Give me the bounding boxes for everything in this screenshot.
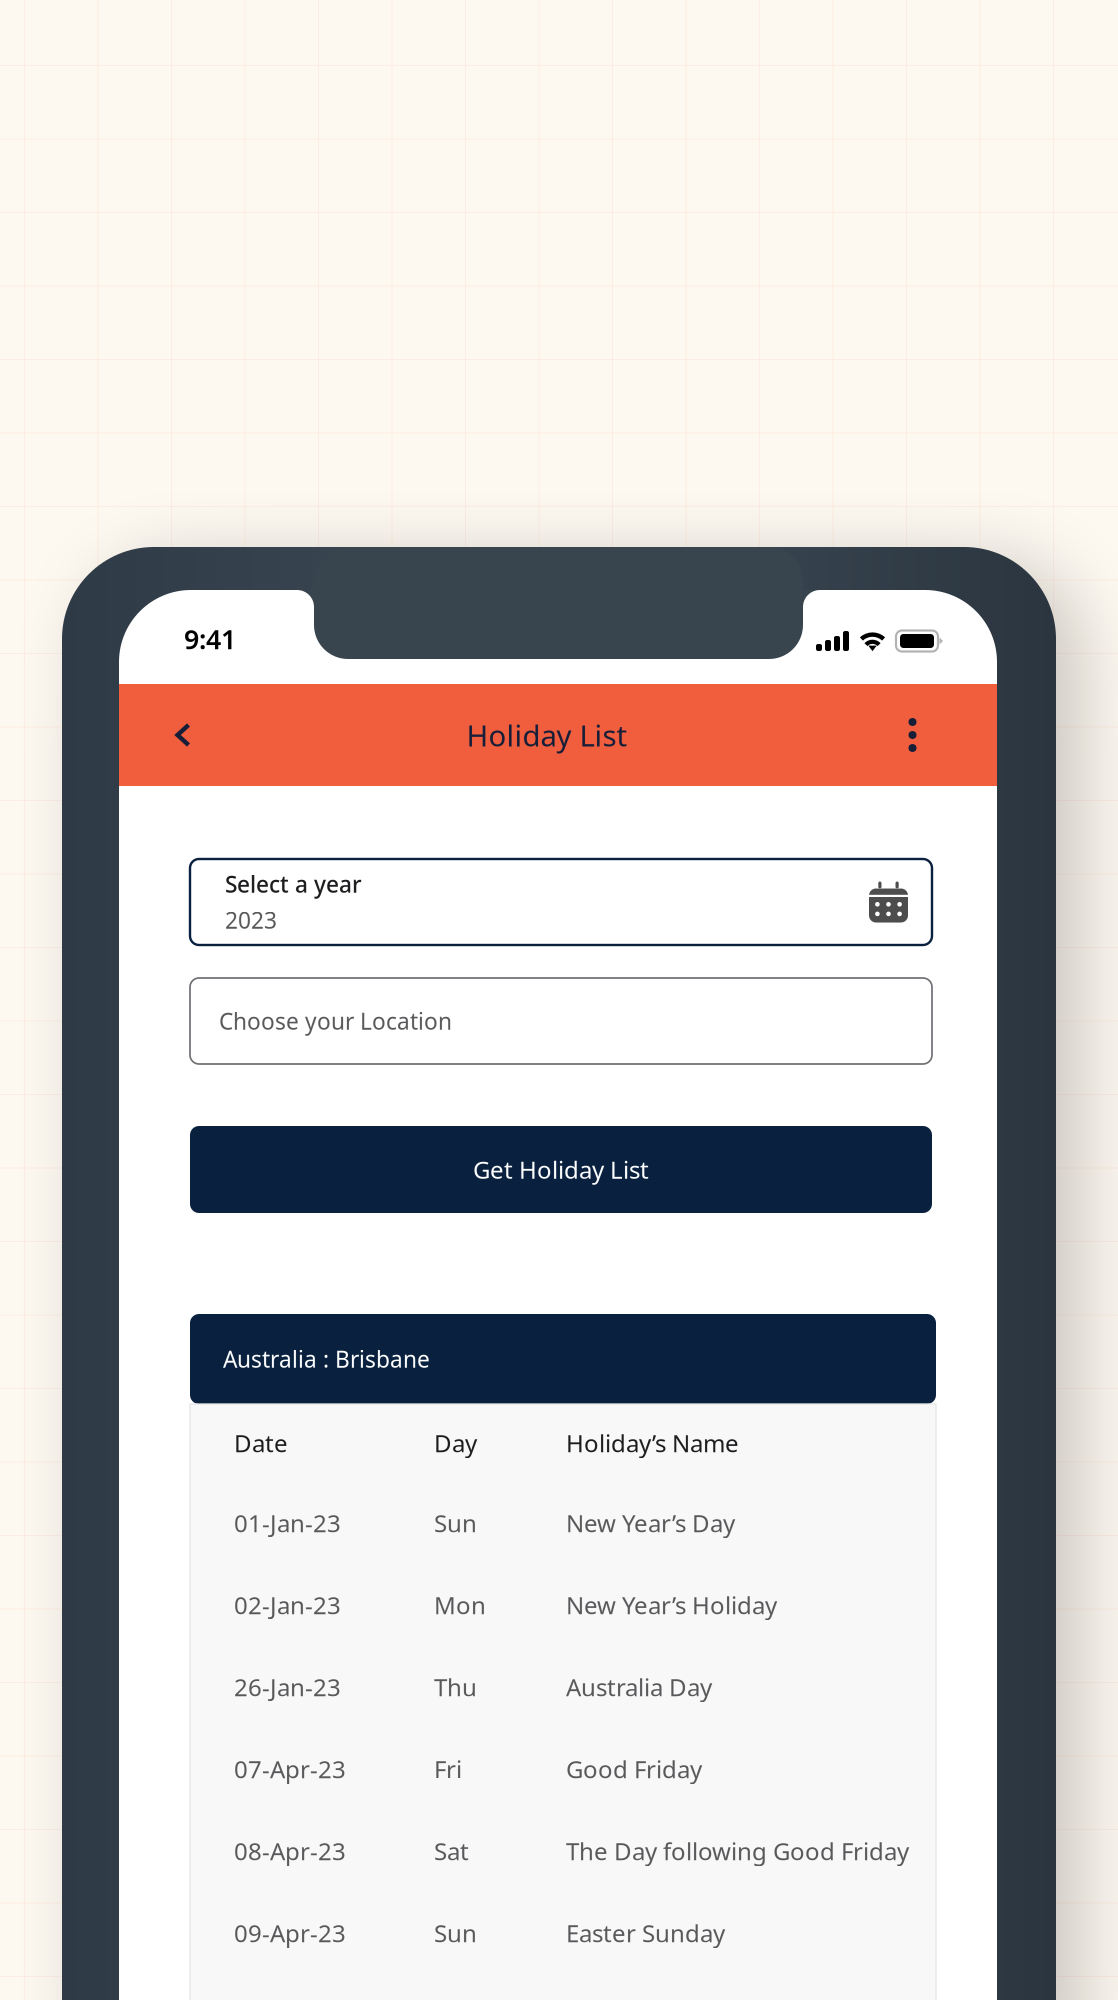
staticText: Australia Day (566, 1671, 712, 1703)
staticText: Select a year (225, 869, 362, 899)
staticText: Holiday List (466, 715, 627, 754)
staticText: Sun (434, 1507, 477, 1539)
button[interactable]: Back (119, 684, 247, 786)
staticText: New Year’s Day (566, 1507, 735, 1539)
staticText: 02-Jan-23 (234, 1589, 341, 1621)
staticText: Day (434, 1427, 477, 1459)
staticText: Mon (434, 1589, 486, 1621)
button[interactable]: Select a year (190, 859, 932, 945)
staticText: 9:41 (184, 621, 236, 657)
staticText: Sat (434, 1835, 469, 1867)
staticText: Date (234, 1427, 288, 1459)
staticText: Australia : Brisbane (223, 1344, 430, 1374)
button[interactable]: More options (828, 684, 997, 786)
staticText: 2023 (225, 905, 277, 935)
staticText: The Day following Good Friday (566, 1835, 909, 1867)
staticText: 01-Jan-23 (234, 1507, 341, 1539)
staticText: 26-Jan-23 (234, 1671, 341, 1703)
staticText: 08-Apr-23 (234, 1835, 346, 1867)
staticText: 07-Apr-23 (234, 1753, 346, 1785)
staticText: Fri (434, 1753, 462, 1785)
staticText: Thu (434, 1671, 477, 1703)
staticText: Easter Sunday (566, 1917, 725, 1949)
staticText: Choose your Location (219, 1006, 452, 1036)
staticText: Get Holiday List (473, 1154, 649, 1185)
staticText: Sun (434, 1917, 477, 1949)
staticText: New Year’s Holiday (566, 1589, 777, 1621)
button[interactable]: Choose your Location (190, 978, 932, 1064)
staticText: 09-Apr-23 (234, 1917, 346, 1949)
staticText: Holiday’s Name (566, 1427, 739, 1459)
staticText: Good Friday (566, 1753, 702, 1785)
button[interactable]: Get Holiday List (190, 1126, 932, 1213)
